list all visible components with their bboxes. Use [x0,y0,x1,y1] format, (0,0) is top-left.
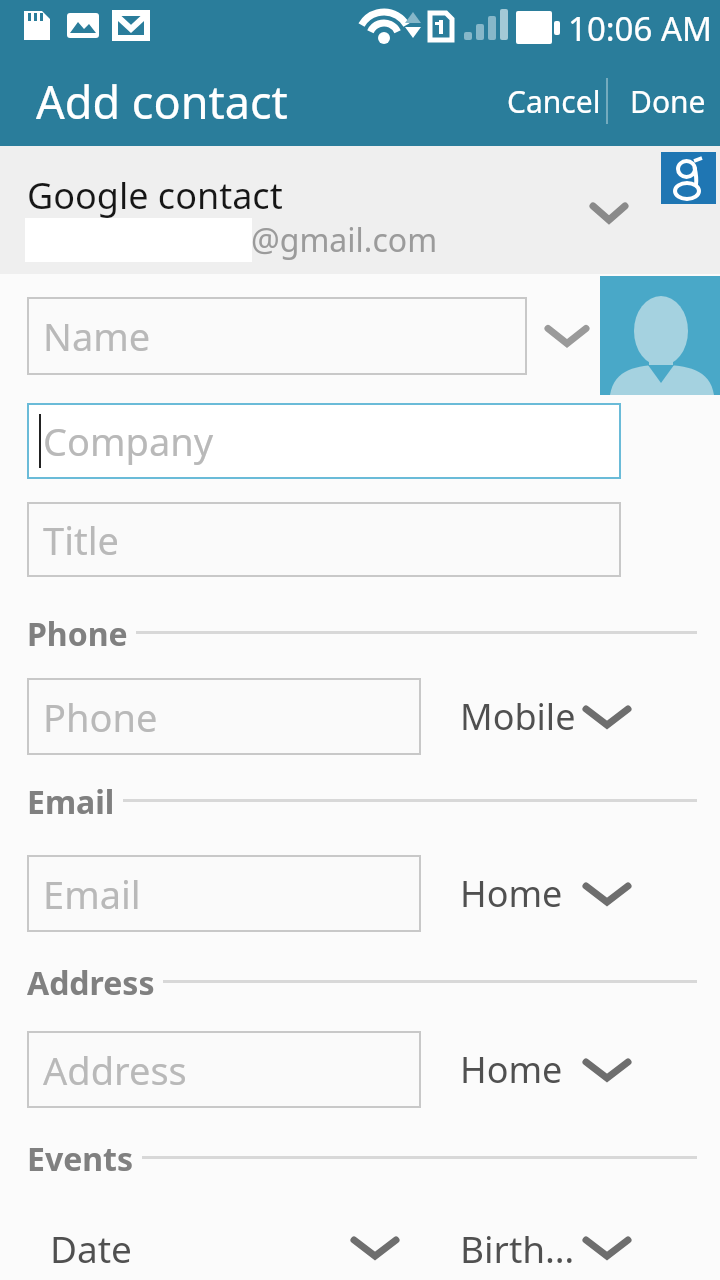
button[interactable]: Home [445,1045,563,1094]
staticText: Email [27,780,115,820]
staticText: Phone [27,612,128,652]
button[interactable]: Title [27,502,621,577]
staticText: Company [43,415,214,467]
staticText: Address [43,1044,187,1096]
staticText: Mobile [460,692,576,741]
button[interactable]: Phone [27,678,421,755]
button[interactable] [600,276,720,395]
staticText: Name [43,310,151,362]
button[interactable]: Done [630,61,706,142]
staticText: Done [630,81,706,122]
button[interactable]: Company [27,403,621,479]
staticText: Address [27,961,155,1001]
staticText: Cancel [507,81,601,122]
button[interactable]: Address [27,1031,421,1108]
staticText: Events [27,1137,134,1177]
staticText: Title [43,514,119,566]
button[interactable]: Cancel [507,61,601,142]
staticText: 10:06 AM [568,6,712,51]
button[interactable]: Email [27,855,421,932]
staticText: Phone [43,691,158,743]
staticText: @gmail.com [251,218,438,262]
staticText: Home [460,869,563,918]
button[interactable]: Home [445,869,563,918]
staticText: Add contact [36,71,288,132]
staticText: Home [460,1045,563,1094]
staticText: Date [50,1223,132,1273]
button[interactable]: Name [27,297,527,375]
button[interactable]: Google contact [0,146,720,274]
button[interactable]: Mobile [445,692,576,741]
staticText: Email [43,868,141,920]
button[interactable]: Date [50,1223,132,1273]
staticText: Google contact [27,171,283,220]
button[interactable]: Birth… [460,1223,575,1273]
staticText: Birth… [460,1223,575,1273]
